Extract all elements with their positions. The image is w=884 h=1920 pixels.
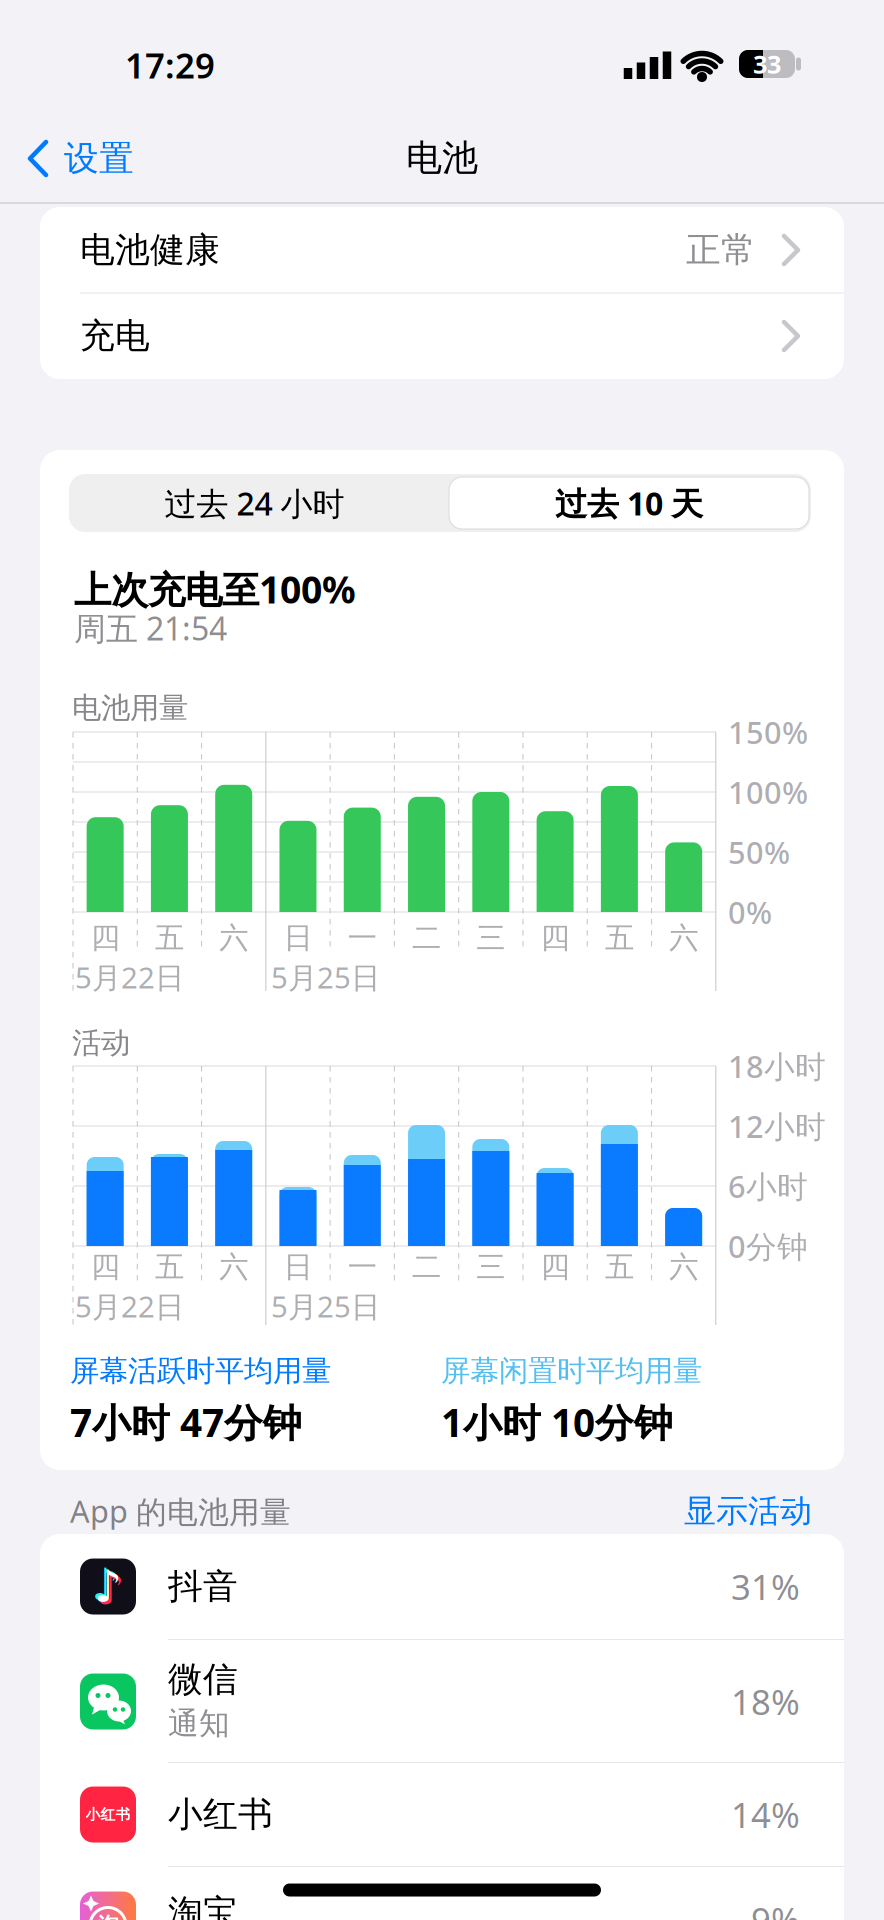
staticText: 六 (219, 920, 248, 956)
button[interactable]: 电池健康 (40, 207, 844, 293)
staticText: 日 (283, 920, 312, 956)
staticText: 通知 (168, 1705, 230, 1742)
staticText: 屏幕活跃时平均用量 (70, 1353, 331, 1389)
staticText: 小红书 (85, 1805, 130, 1823)
staticText: 四 (91, 1249, 120, 1285)
staticText: 一 (348, 920, 377, 956)
staticText: 5月25日 (271, 1286, 380, 1325)
staticText: 六 (669, 1249, 698, 1285)
staticText: ♪ (94, 1561, 122, 1611)
staticText: 5月22日 (75, 957, 184, 996)
staticText: 过去 10 天 (555, 482, 703, 524)
staticText: 0% (728, 892, 772, 932)
staticText: 12小时 (728, 1106, 826, 1146)
staticText: 100% (728, 772, 808, 812)
staticText: 二 (412, 920, 441, 956)
staticText: App 的电池用量 (70, 1491, 291, 1531)
staticText: 充电 (80, 315, 150, 357)
staticText: 过去 24 小时 (164, 482, 344, 524)
staticText: 周五 21:54 (74, 607, 227, 649)
staticText: 18小时 (728, 1046, 826, 1086)
staticText: 显示活动 (684, 1491, 812, 1531)
staticText: 14% (731, 1791, 800, 1837)
button[interactable]: 小红书 (40, 1763, 844, 1866)
staticText: 9% (751, 1896, 800, 1920)
staticText: 50% (728, 832, 790, 872)
staticText: 正常 (686, 229, 756, 271)
staticText: 三 (476, 920, 505, 956)
staticText: 31% (731, 1563, 800, 1609)
staticText: 6小时 (728, 1166, 808, 1206)
staticText: 小红书 (168, 1793, 273, 1836)
staticText: 三 (476, 1249, 505, 1285)
staticText: 淘 (97, 1912, 118, 1920)
staticText: 150% (728, 712, 808, 752)
staticText: 六 (669, 920, 698, 956)
button[interactable]: 显示活动 (592, 1491, 812, 1531)
staticText: 微信 (168, 1658, 238, 1701)
staticText: 5月22日 (75, 1286, 184, 1325)
staticText: 淘宝 (168, 1891, 238, 1920)
staticText: 33 (753, 47, 781, 81)
staticText: 电池用量 (72, 690, 188, 726)
button[interactable]: ♪ (40, 1534, 844, 1639)
button[interactable]: 充电 (40, 293, 844, 379)
staticText: ♪ (96, 1564, 124, 1614)
staticText: 一 (348, 1249, 377, 1285)
staticText: 17:29 (125, 42, 215, 88)
staticText: 四 (91, 920, 120, 956)
staticText: 抖音 (168, 1565, 238, 1608)
button[interactable]: 过去 24 小时 (69, 474, 440, 532)
staticText: 5月25日 (271, 957, 380, 996)
staticText: ♪ (91, 1559, 119, 1609)
button[interactable]: 微信 (40, 1640, 844, 1763)
staticText: 电池 (406, 136, 478, 180)
staticText: 0分钟 (728, 1226, 808, 1266)
button[interactable]: 过去 10 天 (447, 474, 811, 532)
staticText: 六 (219, 1249, 248, 1285)
staticText: 四 (541, 920, 570, 956)
staticText: 日 (283, 1249, 312, 1285)
staticText: 五 (155, 920, 184, 956)
staticText: 设置 (64, 137, 134, 180)
staticText: 屏幕闲置时平均用量 (441, 1353, 702, 1389)
button[interactable]: 淘 (40, 1867, 844, 1920)
staticText: 五 (155, 1249, 184, 1285)
staticText: 五 (605, 920, 634, 956)
staticText: 电池健康 (80, 229, 220, 271)
button[interactable]: 设置 (24, 138, 184, 182)
staticText: 活动 (72, 1025, 130, 1061)
staticText: 1小时 10分钟 (441, 1396, 673, 1448)
staticText: 7小时 47分钟 (70, 1396, 302, 1448)
staticText: 四 (541, 1249, 570, 1285)
staticText: 二 (412, 1249, 441, 1285)
staticText: 五 (605, 1249, 634, 1285)
staticText: 18% (731, 1678, 800, 1724)
staticText: 上次充电至100% (74, 564, 356, 614)
